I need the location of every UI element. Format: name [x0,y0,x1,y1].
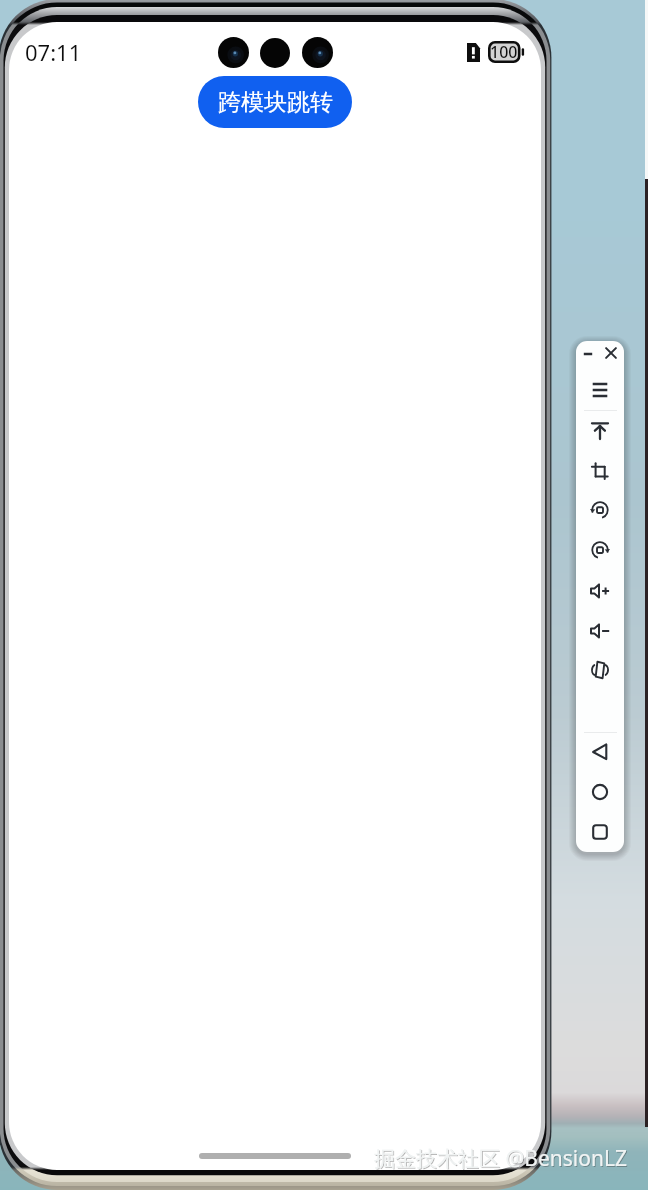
button[interactable]: 跨模块跳转 [198,76,352,128]
button[interactable]: Rotate right [587,537,613,563]
staticText: 100 [490,41,518,63]
button[interactable]: Recents [587,819,613,845]
staticText: 07:11 [25,37,82,67]
button[interactable]: Rotate device [587,657,613,683]
button[interactable]: Rotate left [587,497,613,523]
button[interactable]: Volume up [587,578,613,604]
button[interactable]: Close [598,341,624,366]
staticText: 掘金技术社区 @BensionLZ [375,1145,628,1174]
staticText: 掘金技术社区 @BensionLZ [374,1144,627,1173]
button[interactable]: Minimize [576,341,601,367]
staticText: 跨模块跳转 [218,88,333,117]
button[interactable]: Screenshot [587,458,613,484]
button[interactable]: Power [587,418,613,444]
button[interactable]: Back [587,739,613,765]
button[interactable]: Menu [587,377,613,403]
button[interactable]: Home [587,779,613,805]
button[interactable]: Volume down [587,618,613,644]
